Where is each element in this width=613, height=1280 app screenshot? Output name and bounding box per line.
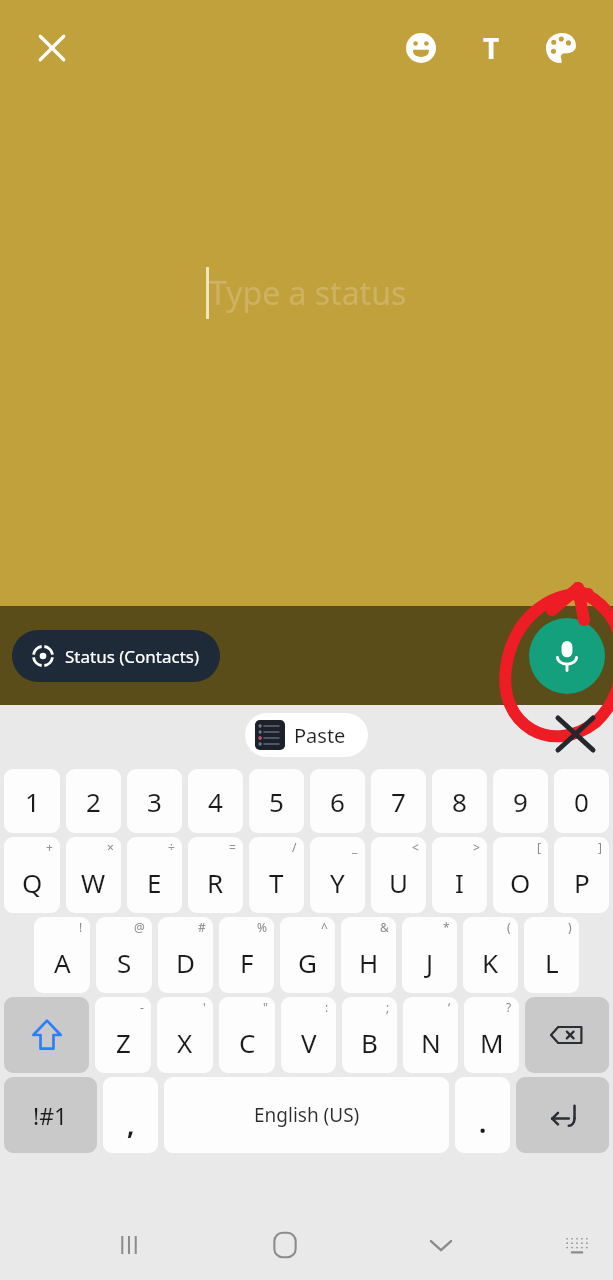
staticText: D <box>176 945 195 980</box>
staticText: ^ <box>321 919 328 935</box>
button[interactable]: English (US) <box>164 1077 449 1153</box>
staticText: O <box>510 865 531 900</box>
button[interactable]: Back <box>413 1217 469 1273</box>
button[interactable]: Backspace <box>525 997 609 1073</box>
staticText: _ <box>352 839 358 855</box>
staticText: ' <box>203 999 206 1015</box>
button[interactable]: 8 <box>432 769 487 833</box>
button[interactable]: ] <box>554 837 609 913</box>
staticText: ? <box>506 999 512 1015</box>
button[interactable]: . <box>455 1077 510 1153</box>
staticText: = <box>229 839 236 855</box>
button[interactable]: 5 <box>249 769 304 833</box>
button[interactable]: 1 <box>4 769 60 833</box>
staticText: F <box>240 945 254 980</box>
staticText: X <box>177 1025 193 1060</box>
staticText: J <box>426 945 434 980</box>
button[interactable]: 6 <box>310 769 365 833</box>
staticText: Q <box>22 865 43 900</box>
staticText: P <box>574 865 590 900</box>
staticText: 0 <box>574 784 589 819</box>
button[interactable]: [ <box>493 837 548 913</box>
button[interactable]: % <box>219 917 274 993</box>
staticText: ‘ <box>448 999 451 1015</box>
button[interactable]: 4 <box>188 769 243 833</box>
staticText: L <box>545 945 559 980</box>
button[interactable]: 0 <box>554 769 609 833</box>
button[interactable]: ? <box>464 997 519 1073</box>
staticText: 4 <box>208 784 223 819</box>
button[interactable]: ) <box>524 917 579 993</box>
button[interactable]: Hide keyboard <box>549 1217 605 1273</box>
staticText: S <box>117 945 132 980</box>
staticText: T <box>269 865 284 900</box>
staticText: M <box>480 1025 504 1060</box>
staticText: Type a status <box>209 271 407 315</box>
staticText: 9 <box>513 784 528 819</box>
staticText: English (US) <box>254 1102 360 1128</box>
staticText: N <box>421 1025 441 1060</box>
button[interactable]: Emoji <box>393 20 449 76</box>
button[interactable]: : <box>281 997 336 1073</box>
staticText: , <box>127 1107 135 1142</box>
button[interactable]: * <box>402 917 457 993</box>
button[interactable]: Shift <box>4 997 89 1073</box>
button[interactable]: ÷ <box>127 837 182 913</box>
staticText: / <box>292 839 297 855</box>
button[interactable]: Close <box>24 20 80 76</box>
button[interactable]: _ <box>310 837 365 913</box>
button[interactable]: ( <box>463 917 518 993</box>
button[interactable]: ' <box>157 997 213 1073</box>
staticText: 1 <box>25 784 40 819</box>
button[interactable]: Background colour <box>533 20 589 76</box>
staticText: Paste <box>294 722 346 749</box>
staticText: K <box>482 945 499 980</box>
button[interactable]: × <box>66 837 121 913</box>
button[interactable]: !#1 <box>4 1077 97 1153</box>
staticText: I <box>455 865 464 900</box>
button[interactable]: - <box>95 997 151 1073</box>
button[interactable]: & <box>341 917 396 993</box>
button[interactable]: ‘ <box>403 997 458 1073</box>
staticText: Z <box>116 1025 131 1060</box>
button[interactable]: ; <box>342 997 397 1073</box>
button[interactable]: 7 <box>371 769 426 833</box>
staticText: Y <box>330 865 345 900</box>
button[interactable]: > <box>432 837 487 913</box>
button[interactable]: Home <box>257 1217 313 1273</box>
button[interactable]: 3 <box>127 769 182 833</box>
staticText: 3 <box>147 784 162 819</box>
staticText: 8 <box>452 784 467 819</box>
button[interactable]: / <box>249 837 304 913</box>
staticText: ( <box>507 919 511 935</box>
button[interactable]: Voice message <box>529 618 605 694</box>
staticText: H <box>359 945 379 980</box>
staticText: ; <box>386 999 390 1015</box>
button[interactable]: " <box>219 997 275 1073</box>
button[interactable]: ^ <box>280 917 335 993</box>
button[interactable]: @ <box>96 917 152 993</box>
button[interactable]: 2 <box>66 769 121 833</box>
staticText: B <box>361 1025 378 1060</box>
staticText: !#1 <box>33 1100 68 1131</box>
button[interactable]: + <box>4 837 60 913</box>
button[interactable]: # <box>158 917 213 993</box>
button[interactable]: Recents <box>101 1217 157 1273</box>
staticText: W <box>81 865 106 900</box>
staticText: [ <box>537 839 541 855</box>
staticText: U <box>389 865 409 900</box>
button[interactable]: < <box>371 837 426 913</box>
button[interactable]: Enter <box>516 1077 609 1153</box>
button[interactable]: , <box>103 1077 158 1153</box>
staticText: A <box>54 945 71 980</box>
staticText: 7 <box>391 784 406 819</box>
button[interactable]: = <box>188 837 243 913</box>
button[interactable]: Status (Contacts) <box>12 630 220 682</box>
staticText: " <box>263 999 268 1015</box>
button[interactable]: ! <box>34 917 90 993</box>
button[interactable]: Paste <box>245 713 368 757</box>
button[interactable]: 9 <box>493 769 548 833</box>
staticText: C <box>239 1025 256 1060</box>
button[interactable]: Text style <box>463 20 519 76</box>
staticText: 6 <box>330 784 345 819</box>
